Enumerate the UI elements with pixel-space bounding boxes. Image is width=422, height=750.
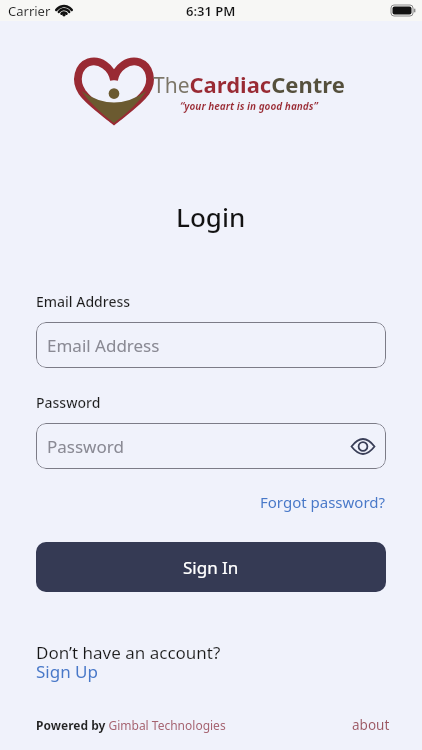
button[interactable]: about (352, 716, 390, 734)
staticText: Email Address (47, 334, 160, 357)
button[interactable]: Password (36, 423, 386, 469)
staticText: Carrier (8, 2, 51, 20)
staticText: Login (176, 199, 246, 234)
button[interactable]: Sign Up (36, 660, 98, 683)
staticText: about (352, 716, 390, 734)
staticText: Forgot password? (260, 492, 386, 512)
staticText: Powered by Gimbal Technologies (36, 717, 226, 733)
staticText: Email Address (36, 292, 131, 311)
staticText: Password (36, 393, 101, 412)
staticText: Don’t have an account? (36, 641, 221, 664)
staticText: Password (47, 435, 124, 458)
button[interactable]: Forgot password? (260, 492, 386, 512)
staticText: 6:31 PM (186, 2, 236, 20)
button[interactable]: Sign In (36, 542, 386, 592)
staticText: “your heart is in good hands” (180, 99, 318, 113)
button[interactable]: Email Address (36, 322, 386, 368)
staticText: Sign In (183, 556, 239, 579)
staticText: TheCardiacCentre (153, 69, 345, 99)
staticText: Sign Up (36, 660, 98, 683)
